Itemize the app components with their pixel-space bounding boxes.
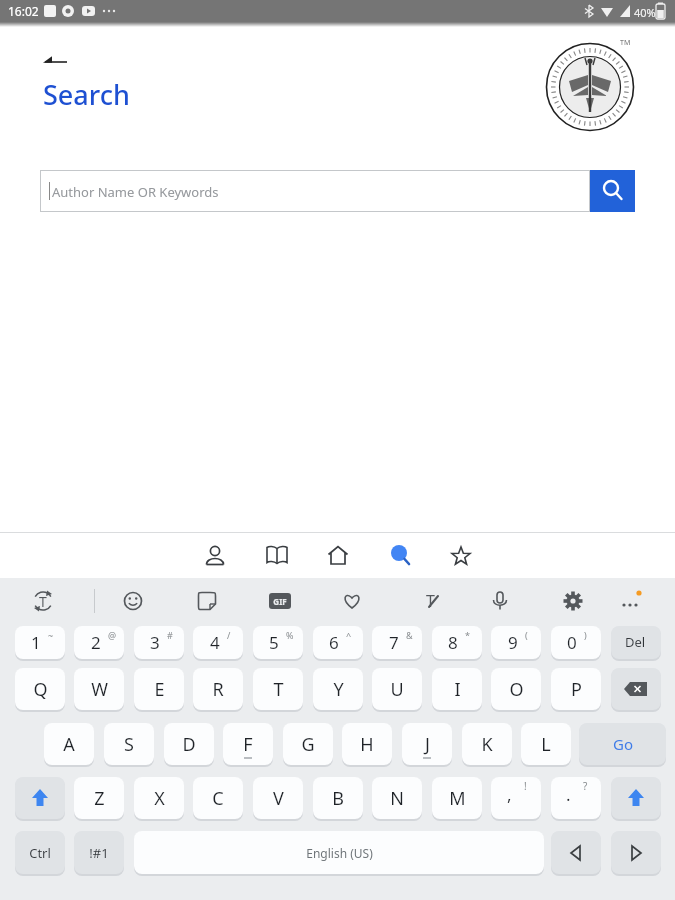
- staticText: R: [212, 677, 224, 702]
- staticText: Y: [333, 677, 344, 702]
- staticText: H: [360, 732, 374, 757]
- button[interactable]: [590, 170, 635, 212]
- button[interactable]: V: [253, 777, 303, 819]
- button[interactable]: [334, 583, 370, 619]
- button[interactable]: L: [521, 723, 571, 765]
- staticText: *: [465, 629, 470, 641]
- staticText: Del: [625, 633, 646, 651]
- staticText: /: [227, 629, 231, 641]
- button[interactable]: [615, 583, 649, 619]
- staticText: 4: [210, 631, 220, 654]
- button[interactable]: T: [24, 583, 62, 619]
- staticText: 2: [91, 631, 101, 654]
- button[interactable]: [74, 626, 124, 659]
- staticText: 0: [567, 631, 577, 654]
- button[interactable]: S: [104, 723, 154, 765]
- staticText: S: [124, 732, 134, 757]
- staticText: @: [108, 629, 117, 641]
- button[interactable]: [611, 777, 661, 819]
- button[interactable]: N: [372, 777, 422, 819]
- button[interactable]: R: [193, 668, 243, 710]
- staticText: ?: [583, 779, 588, 793]
- button[interactable]: [313, 626, 363, 659]
- staticText: ^: [346, 629, 352, 641]
- staticText: 6: [329, 631, 339, 654]
- staticText: (: [525, 629, 528, 641]
- button[interactable]: Go: [579, 723, 666, 765]
- button[interactable]: A: [44, 723, 94, 765]
- staticText: I: [454, 677, 461, 702]
- button[interactable]: [551, 777, 601, 819]
- staticText: Z: [94, 786, 105, 811]
- button[interactable]: E: [134, 668, 184, 710]
- button[interactable]: U: [372, 668, 422, 710]
- button[interactable]: P: [551, 668, 601, 710]
- button[interactable]: [491, 777, 541, 819]
- button[interactable]: T: [415, 583, 445, 619]
- staticText: N: [390, 786, 404, 811]
- button[interactable]: M: [432, 777, 482, 819]
- button[interactable]: [611, 626, 661, 659]
- button[interactable]: O: [491, 668, 541, 710]
- button[interactable]: [491, 626, 541, 659]
- button[interactable]: Ctrl: [15, 831, 65, 874]
- button[interactable]: B: [313, 777, 363, 819]
- staticText: !#1: [89, 844, 109, 862]
- button[interactable]: [15, 777, 65, 819]
- button[interactable]: [189, 583, 225, 619]
- button[interactable]: [40, 50, 76, 70]
- button[interactable]: T: [253, 668, 303, 710]
- button[interactable]: Y: [313, 668, 363, 710]
- staticText: G: [301, 732, 315, 757]
- button[interactable]: X: [134, 777, 184, 819]
- staticText: W: [91, 677, 108, 702]
- button[interactable]: [189, 533, 241, 578]
- staticText: J: [425, 732, 430, 757]
- staticText: 8: [448, 631, 458, 654]
- button[interactable]: [193, 626, 243, 659]
- staticText: Q: [33, 677, 48, 702]
- button[interactable]: [555, 583, 591, 619]
- button[interactable]: [435, 533, 487, 578]
- staticText: Search: [43, 76, 130, 113]
- button[interactable]: [251, 533, 303, 578]
- button[interactable]: [611, 668, 661, 710]
- button[interactable]: [551, 831, 601, 874]
- staticText: &: [406, 629, 413, 641]
- button[interactable]: F: [223, 723, 273, 765]
- button[interactable]: W: [74, 668, 124, 710]
- button[interactable]: Z: [74, 777, 124, 819]
- button[interactable]: [374, 533, 426, 578]
- staticText: T: [426, 590, 435, 612]
- button[interactable]: C: [193, 777, 243, 819]
- button[interactable]: D: [164, 723, 214, 765]
- button[interactable]: [482, 583, 518, 619]
- button[interactable]: J: [402, 723, 452, 765]
- button[interactable]: [432, 626, 482, 659]
- staticText: Author Name OR Keywords: [52, 183, 219, 201]
- staticText: U: [390, 677, 404, 702]
- button[interactable]: English (US): [134, 831, 544, 874]
- button[interactable]: [15, 626, 65, 659]
- button[interactable]: H: [342, 723, 392, 765]
- button[interactable]: [115, 583, 151, 619]
- button[interactable]: K: [462, 723, 512, 765]
- button[interactable]: [134, 626, 184, 659]
- staticText: ~: [48, 629, 54, 641]
- button[interactable]: [312, 533, 364, 578]
- button[interactable]: [372, 626, 422, 659]
- button[interactable]: Author Name OR Keywords: [40, 170, 590, 212]
- staticText: 7: [389, 631, 399, 654]
- button[interactable]: !#1: [74, 831, 124, 874]
- staticText: Go: [613, 734, 633, 754]
- button[interactable]: I: [432, 668, 482, 710]
- button[interactable]: [611, 831, 661, 874]
- button[interactable]: GIF: [269, 593, 291, 609]
- staticText: 9: [508, 631, 518, 654]
- staticText: !: [524, 779, 527, 793]
- button[interactable]: [551, 626, 601, 659]
- staticText: K: [481, 732, 493, 757]
- button[interactable]: G: [283, 723, 333, 765]
- button[interactable]: Q: [15, 668, 65, 710]
- button[interactable]: [253, 626, 303, 659]
